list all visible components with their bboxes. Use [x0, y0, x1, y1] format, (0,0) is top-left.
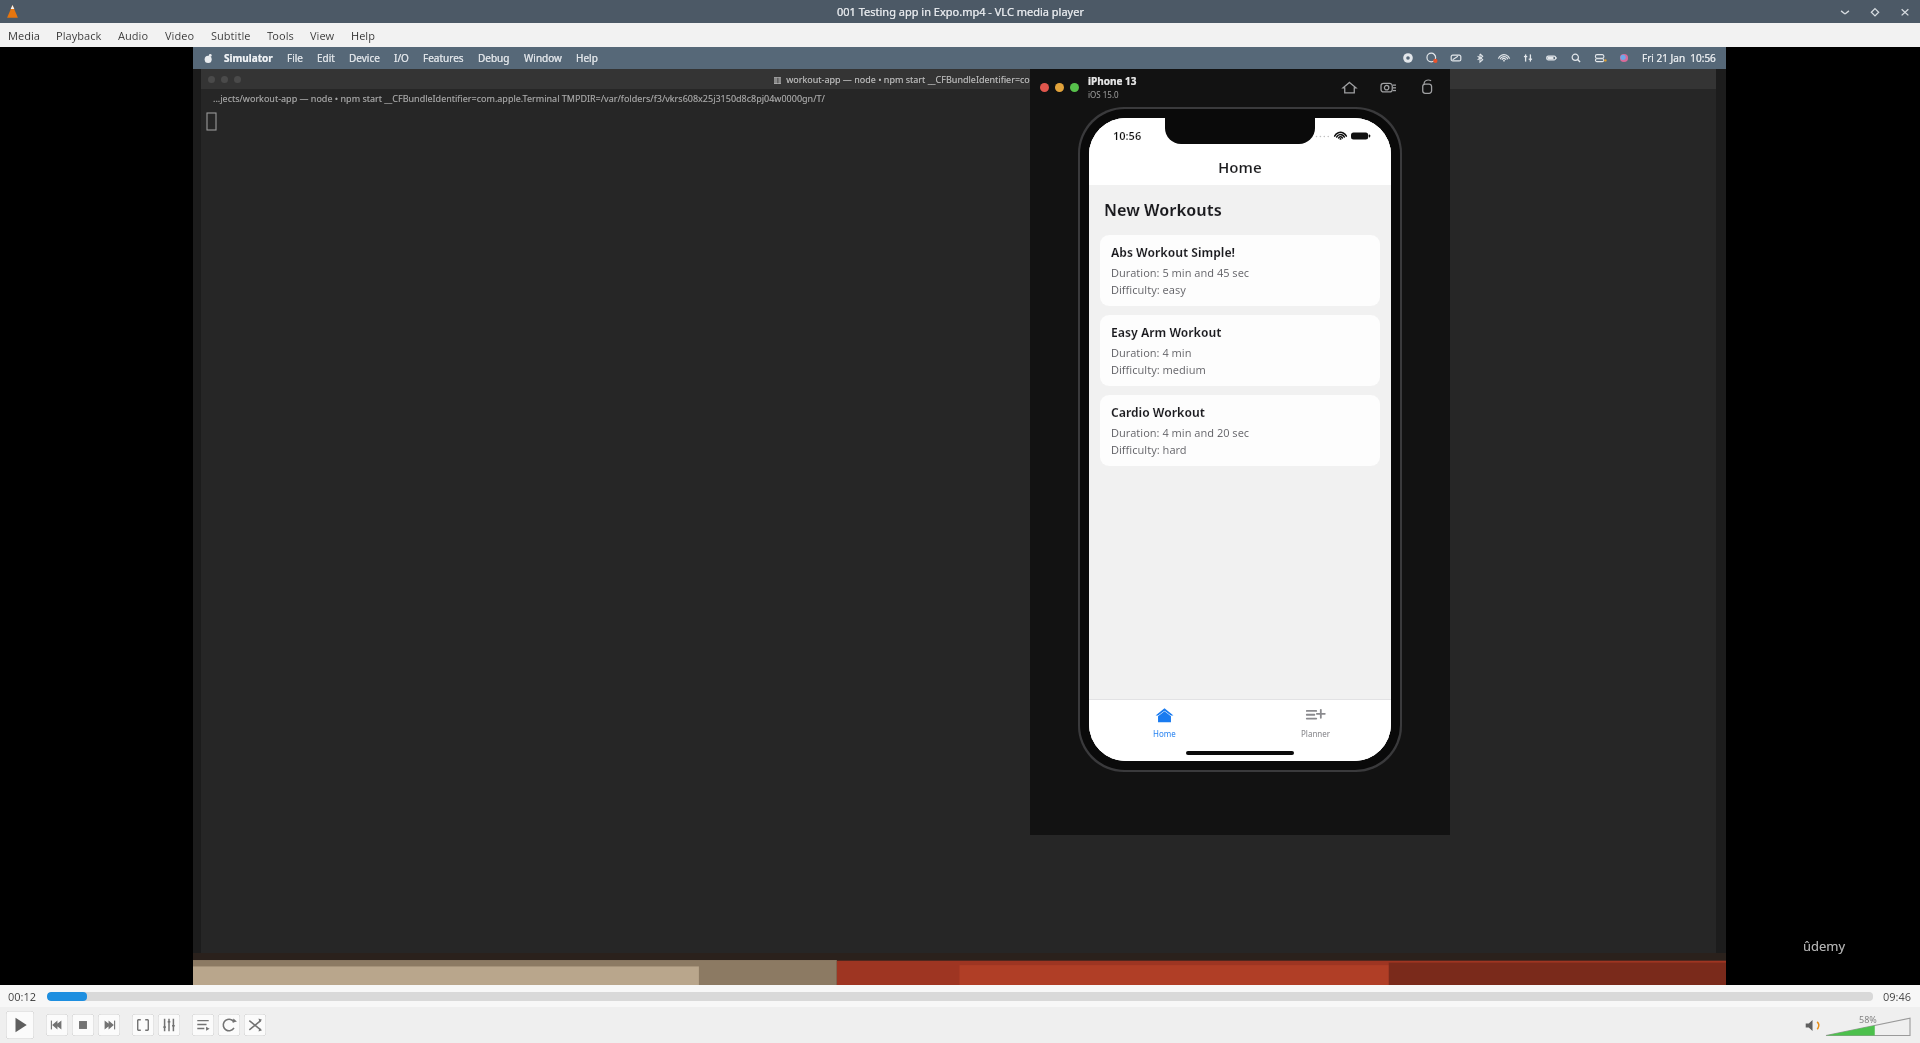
button[interactable]: View [302, 25, 343, 46]
button[interactable]: Next [98, 1014, 120, 1036]
staticText: Audio [118, 28, 149, 43]
button[interactable]: Volume [1826, 1013, 1910, 1037]
staticText: Easy Arm Workout [1111, 324, 1222, 340]
staticText: Help [351, 28, 375, 43]
button[interactable]: Audio [110, 25, 157, 46]
staticText: 09:46 [1883, 989, 1912, 1004]
button[interactable]: Stop [72, 1014, 94, 1036]
button[interactable]: Zoom simulator [1070, 83, 1079, 92]
button[interactable]: Shuffle [244, 1014, 266, 1036]
button[interactable]: Planner [1240, 700, 1391, 744]
button[interactable]: Playlist [192, 1014, 214, 1036]
staticText: View [310, 28, 335, 43]
staticText: Difficulty: medium [1111, 362, 1206, 377]
staticText: Duration: 5 min and 45 sec [1111, 265, 1250, 280]
staticText: iPhone 13 [1088, 74, 1137, 88]
staticText: iOS 15.0 [1088, 89, 1119, 100]
staticText: Subtitle [211, 28, 251, 43]
staticText: Difficulty: hard [1111, 442, 1187, 457]
button[interactable]: Close simulator [1040, 83, 1049, 92]
staticText: ...jects/workout-app — node • npm start … [213, 92, 825, 104]
staticText: Window [524, 51, 562, 65]
staticText: Fri 21 Jan 10:56 [1642, 51, 1716, 65]
staticText: I/O [394, 51, 409, 65]
staticText: File [287, 51, 303, 65]
button[interactable]: Media [0, 25, 48, 46]
staticText: 001 Testing app in Expo.mp4 - VLC media … [837, 4, 1084, 19]
button[interactable]: Help [343, 25, 383, 46]
staticText: ûdemy [1803, 937, 1846, 955]
staticText: Help [576, 51, 598, 65]
staticText: Abs Workout Simple! [1111, 244, 1235, 260]
staticText: ▥ workout-app — node • npm start __CFBun… [773, 73, 1145, 85]
staticText: Difficulty: easy [1111, 282, 1186, 297]
button[interactable]: Close [1898, 5, 1912, 19]
staticText: Media [8, 28, 40, 43]
button[interactable]: Minimize [1838, 5, 1852, 19]
staticText: Home [1153, 728, 1176, 739]
button[interactable]: Play [6, 1011, 34, 1039]
button[interactable]: Maximize [1868, 5, 1882, 19]
staticText: Edit [317, 51, 335, 65]
staticText: Device [349, 51, 380, 65]
staticText: 10:56 [1113, 128, 1142, 143]
staticText: Features [423, 51, 464, 65]
button[interactable]: Playback [48, 25, 110, 46]
staticText: 58% [1859, 1013, 1877, 1025]
button[interactable]: Mute [1803, 1017, 1820, 1034]
button[interactable]: Loop [218, 1014, 240, 1036]
staticText: Debug [478, 51, 510, 65]
button[interactable]: Home [1341, 79, 1358, 96]
staticText: New Workouts [1104, 199, 1222, 221]
staticText: Playback [56, 28, 102, 43]
button[interactable]: Tools [259, 25, 302, 46]
button[interactable]: Effects [158, 1014, 180, 1036]
staticText: Video [165, 28, 195, 43]
button[interactable]: Minimize simulator [1055, 83, 1064, 92]
button[interactable]: Subtitle [203, 25, 259, 46]
button[interactable]: Home [1089, 700, 1240, 744]
staticText: Duration: 4 min [1111, 345, 1192, 360]
button[interactable]: Cardio Workout [1100, 395, 1380, 466]
button[interactable]: Video [157, 25, 203, 46]
staticText: Cardio Workout [1111, 404, 1205, 420]
staticText: Duration: 4 min and 20 sec [1111, 425, 1250, 440]
staticText: 00:12 [8, 989, 37, 1004]
staticText: Home [1218, 157, 1262, 177]
button[interactable]: Seek [47, 992, 1873, 1001]
button[interactable]: Previous [46, 1014, 68, 1036]
button[interactable]: Fullscreen [132, 1014, 154, 1036]
button[interactable]: Screenshot [1380, 79, 1397, 96]
button[interactable]: Rotate [1419, 79, 1436, 96]
button[interactable]: Abs Workout Simple! [1100, 235, 1380, 306]
staticText: Tools [267, 28, 294, 43]
staticText: Simulator [224, 51, 273, 65]
staticText: Planner [1301, 728, 1331, 739]
button[interactable]: Easy Arm Workout [1100, 315, 1380, 386]
